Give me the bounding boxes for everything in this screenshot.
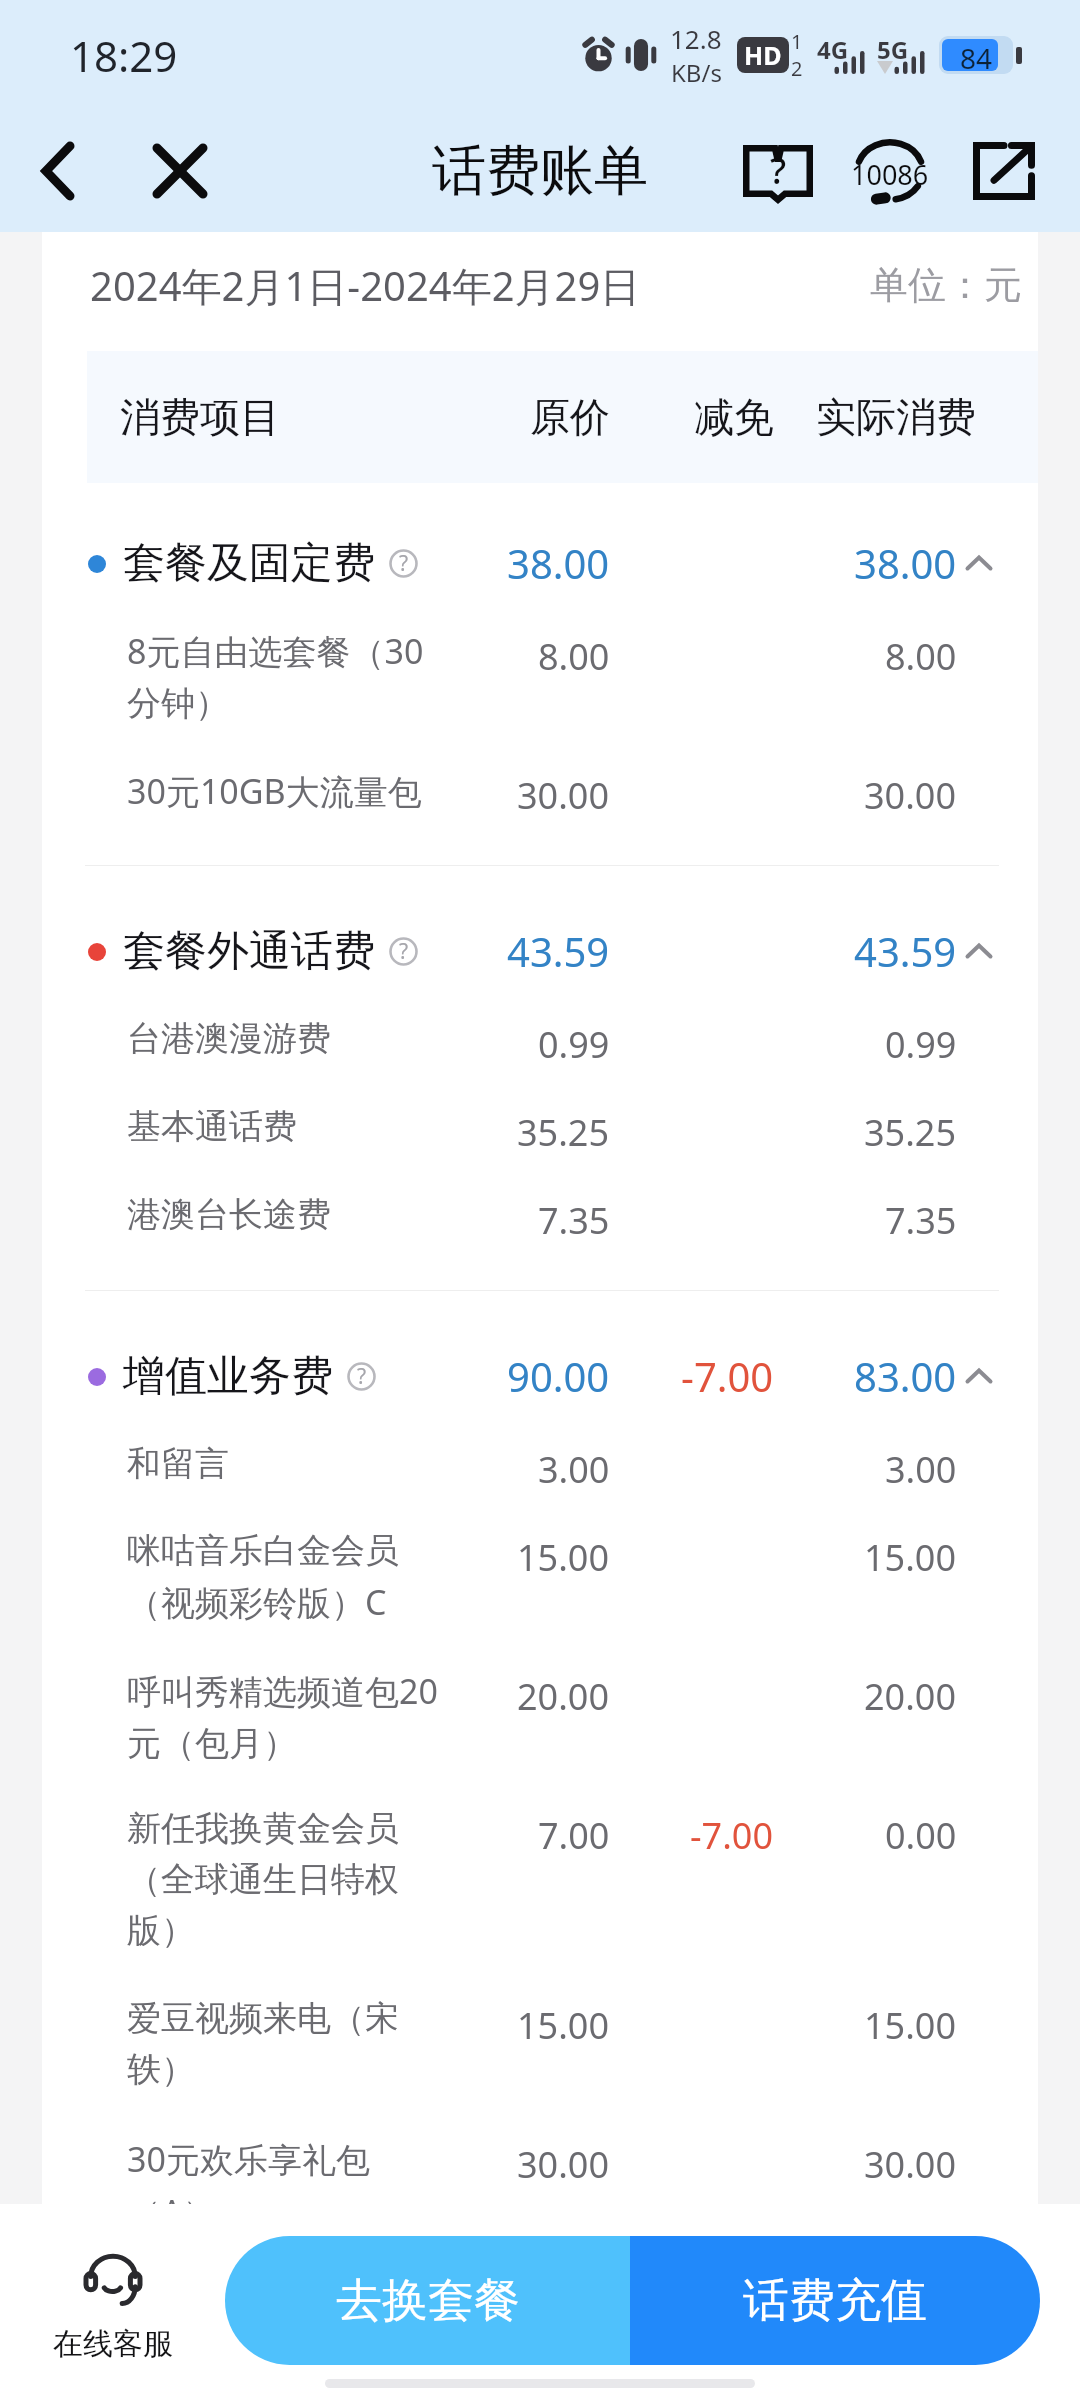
staticText: KB/s xyxy=(671,56,722,89)
staticText: 话费账单 xyxy=(432,137,648,205)
staticText: 套餐及固定费 xyxy=(123,537,375,590)
button[interactable]: Call 10086 xyxy=(834,121,946,221)
staticText: 7.35 xyxy=(885,1196,957,1241)
staticText: 30.00 xyxy=(864,771,957,816)
staticText: 基本通话费 xyxy=(127,1105,462,1157)
staticText: 3.00 xyxy=(538,1445,610,1490)
staticText: 0.99 xyxy=(885,1020,957,1065)
staticText: 20.00 xyxy=(517,1672,610,1717)
staticText: 30元10GB大流量包 xyxy=(127,768,462,820)
staticText: 港澳台长途费 xyxy=(127,1193,462,1245)
button[interactable]: 话费充值 xyxy=(630,2236,1040,2365)
staticText: 20.00 xyxy=(864,1672,957,1717)
button[interactable]: 呼叫秀精选频道包20 元（包月） xyxy=(42,1672,1038,1768)
staticText: -7.00 xyxy=(690,1811,774,1856)
button[interactable]: Back xyxy=(18,131,98,211)
staticText: 单位：元 xyxy=(870,261,1022,309)
staticText: 套餐外通话费 xyxy=(123,925,375,978)
staticText: 15.00 xyxy=(517,1533,610,1578)
button[interactable]: 台港澳漫游费 xyxy=(42,1020,1038,1065)
button[interactable]: 增值业务费 xyxy=(42,1345,1038,1407)
staticText: 1 xyxy=(791,28,803,55)
staticText: 咪咕音乐白金会员 （视频彩铃版）C xyxy=(127,1529,462,1633)
staticText: 和留言 xyxy=(127,1442,462,1494)
staticText: 4G xyxy=(817,33,849,66)
button[interactable]: 新任我换黄金会员 （全球通生日特权 版） xyxy=(42,1811,1038,1958)
button[interactable]: 套餐外通话费 xyxy=(42,920,1038,982)
staticText: 减免 xyxy=(694,392,774,442)
button[interactable]: Share xyxy=(948,121,1060,221)
staticText: 10086 xyxy=(851,156,929,193)
staticText: 90.00 xyxy=(507,1349,610,1403)
staticText: 8元自由选套餐（30 分钟） xyxy=(127,628,462,732)
staticText: 12.8 xyxy=(670,21,722,56)
staticText: 30.00 xyxy=(517,771,610,816)
staticText: ? xyxy=(770,146,787,195)
staticText: 35.25 xyxy=(517,1108,610,1153)
button[interactable]: Close xyxy=(140,131,220,211)
staticText: 0.00 xyxy=(885,1811,957,1856)
staticText: -7.00 xyxy=(681,1349,774,1403)
staticText: 15.00 xyxy=(517,2001,610,2046)
staticText: 5G xyxy=(877,33,909,66)
staticText: HD xyxy=(744,38,782,72)
staticText: 84 xyxy=(960,39,993,71)
staticText: 7.35 xyxy=(538,1196,610,1241)
staticText: ? xyxy=(399,937,409,966)
button[interactable]: 30元10GB大流量包 xyxy=(42,771,1038,816)
staticText: 43.59 xyxy=(507,924,610,978)
button[interactable]: 和留言 xyxy=(42,1445,1038,1490)
staticText: 18:29 xyxy=(70,27,178,84)
staticText: 台港澳漫游费 xyxy=(127,1017,462,1069)
button[interactable]: 爱豆视频来电（宋 轶） xyxy=(42,2001,1038,2097)
button[interactable]: 在线客服 xyxy=(43,2252,183,2363)
button[interactable]: 8元自由选套餐（30 分钟） xyxy=(42,632,1038,728)
button[interactable]: 咪咕音乐白金会员 （视频彩铃版）C xyxy=(42,1533,1038,1629)
button[interactable]: 30元欢乐享礼包 （A） xyxy=(42,2140,1038,2204)
staticText: ? xyxy=(399,549,409,578)
staticText: 15.00 xyxy=(864,1533,957,1578)
staticText: 30元欢乐享礼包 （A） xyxy=(127,2136,462,2204)
button[interactable]: 去换套餐 xyxy=(225,2236,630,2365)
staticText: 去换套餐 xyxy=(336,2272,520,2330)
staticText: 8.00 xyxy=(885,632,957,677)
staticText: 38.00 xyxy=(507,536,610,590)
staticText: 43.59 xyxy=(854,924,957,978)
staticText: 7.00 xyxy=(538,1811,610,1856)
staticText: 增值业务费 xyxy=(123,1350,333,1403)
button[interactable]: 港澳台长途费 xyxy=(42,1196,1038,1241)
staticText: 35.25 xyxy=(864,1108,957,1153)
staticText: 30.00 xyxy=(517,2140,610,2185)
staticText: 38.00 xyxy=(854,536,957,590)
staticText: 8.00 xyxy=(538,632,610,677)
staticText: ? xyxy=(357,1362,367,1391)
staticText: 3.00 xyxy=(885,1445,957,1490)
button[interactable]: 套餐及固定费 xyxy=(42,532,1038,594)
staticText: 15.00 xyxy=(864,2001,957,2046)
staticText: 爱豆视频来电（宋 轶） xyxy=(127,1997,462,2101)
staticText: 呼叫秀精选频道包20 元（包月） xyxy=(127,1668,462,1772)
staticText: 话费充值 xyxy=(743,2272,927,2330)
staticText: 消费项目 xyxy=(120,392,280,442)
button[interactable]: 基本通话费 xyxy=(42,1108,1038,1153)
button[interactable]: Help xyxy=(722,121,834,221)
staticText: 原价 xyxy=(530,392,610,442)
staticText: 实际消费 xyxy=(816,392,976,442)
staticText: 30.00 xyxy=(864,2140,957,2185)
staticText: 0.99 xyxy=(538,1020,610,1065)
staticText: 在线客服 xyxy=(53,2325,173,2363)
staticText: 新任我换黄金会员 （全球通生日特权 版） xyxy=(127,1807,462,1963)
staticText: 2024年2月1日-2024年2月29日 xyxy=(90,258,641,313)
staticText: 2 xyxy=(791,55,803,82)
staticText: 83.00 xyxy=(854,1349,957,1403)
